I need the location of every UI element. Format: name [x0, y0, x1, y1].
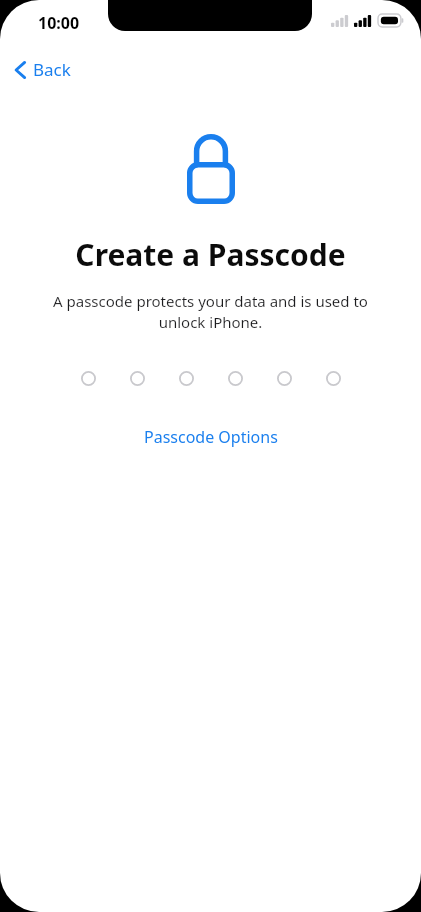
button[interactable]: Passcode Options: [134, 422, 288, 452]
button[interactable]: Back: [10, 54, 75, 85]
staticText: 10:00: [38, 12, 80, 34]
staticText: A passcode protects your data and is use…: [34, 291, 387, 333]
staticText: Create a Passcode: [75, 234, 346, 275]
other: Passcode lock: [187, 134, 235, 204]
staticText: Back: [33, 58, 71, 81]
staticText: Passcode Options: [144, 426, 278, 448]
